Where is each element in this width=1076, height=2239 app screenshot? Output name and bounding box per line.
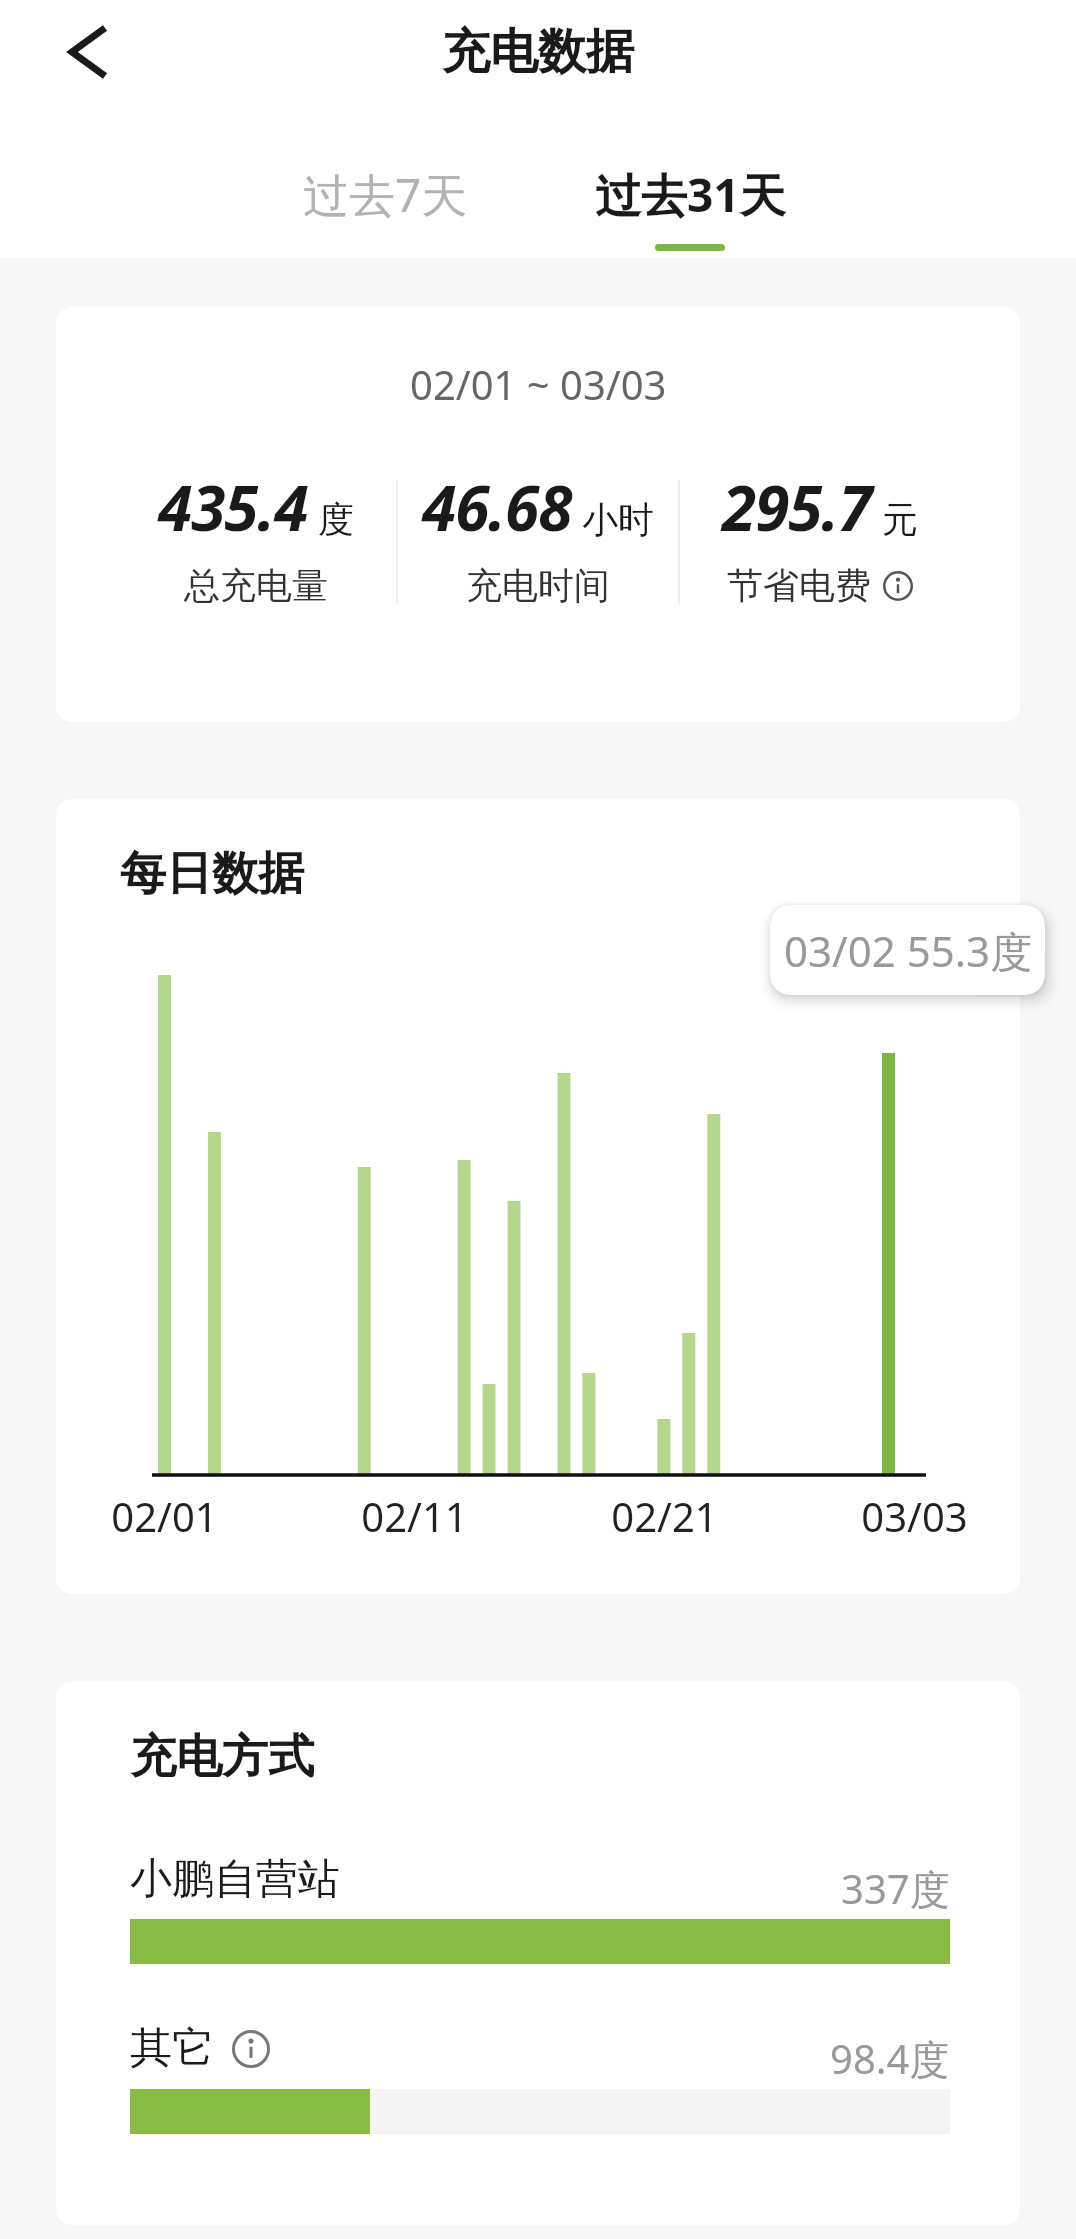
staticText: 充电数据 bbox=[442, 22, 634, 82]
staticText: 节省电费 bbox=[727, 563, 871, 608]
staticText: 充电时间 bbox=[466, 563, 610, 608]
staticText: 02/11 bbox=[361, 1489, 468, 1543]
staticText: 元 bbox=[882, 497, 918, 542]
staticText: 过去31天 bbox=[595, 163, 786, 226]
staticText: 435.4 bbox=[158, 465, 308, 549]
button[interactable] bbox=[48, 16, 128, 88]
staticText: 02/01 bbox=[111, 1489, 218, 1543]
staticText: 小鹏自营站 bbox=[130, 1853, 340, 1906]
staticText: 充电方式 bbox=[130, 1728, 314, 1786]
staticText: 02/21 bbox=[611, 1489, 718, 1543]
staticText: 小时 bbox=[582, 497, 654, 542]
button[interactable]: 过去7天 bbox=[255, 130, 515, 258]
button[interactable]: 过去31天 bbox=[560, 130, 820, 258]
staticText: 度 bbox=[318, 497, 354, 542]
staticText: 295.7 bbox=[722, 465, 872, 549]
staticText: 过去7天 bbox=[303, 163, 468, 226]
staticText: 总充电量 bbox=[184, 563, 328, 608]
staticText: 其它 bbox=[130, 2022, 214, 2075]
button[interactable] bbox=[232, 2030, 270, 2068]
staticText: 每日数据 bbox=[120, 845, 304, 903]
staticText: 03/03 bbox=[861, 1489, 968, 1543]
staticText: 02/01 ~ 03/03 bbox=[410, 357, 667, 411]
staticText: 46.68 bbox=[422, 465, 572, 549]
staticText: 03/02 55.3度 bbox=[784, 922, 1032, 979]
staticText: 98.4度 bbox=[830, 2031, 950, 2086]
button[interactable] bbox=[883, 571, 913, 601]
staticText: 337度 bbox=[841, 1861, 950, 1916]
